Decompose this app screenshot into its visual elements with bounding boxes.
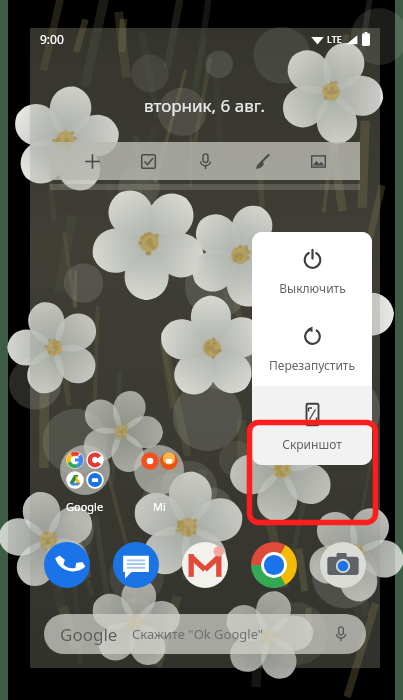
button[interactable]: Скриншот xyxy=(252,386,372,465)
button[interactable]: Camera xyxy=(320,542,366,588)
button[interactable]: Image note xyxy=(303,146,333,176)
staticText: Скажите "Ok Google" xyxy=(132,625,264,643)
other: Google folder xyxy=(60,445,110,495)
staticText: 9:00 xyxy=(40,31,64,47)
staticText: Google xyxy=(60,623,118,646)
button[interactable]: Перезапустить xyxy=(252,309,372,386)
button[interactable]: Chrome xyxy=(251,542,297,588)
button[interactable]: Gmail xyxy=(182,542,228,588)
other: Phone xyxy=(44,542,90,588)
button[interactable]: вторник, 6 авг. xyxy=(144,94,266,117)
button[interactable]: Google xyxy=(44,614,366,654)
button[interactable]: New note xyxy=(77,146,107,176)
staticText: Скриншот xyxy=(282,436,342,452)
staticText: Google xyxy=(66,499,104,514)
button[interactable]: New list xyxy=(133,146,163,176)
button[interactable]: Drawing note xyxy=(247,146,277,176)
other: Messages xyxy=(113,542,159,588)
button[interactable]: Google folder xyxy=(48,445,122,514)
staticText: LTE xyxy=(327,33,342,45)
staticText: Выключить xyxy=(279,280,346,296)
button[interactable]: Phone xyxy=(44,542,90,588)
other: Chrome xyxy=(251,542,297,588)
button[interactable]: Mi folder xyxy=(122,445,196,514)
other: Mi folder xyxy=(134,445,184,495)
button[interactable]: Voice note xyxy=(190,146,220,176)
staticText: Перезапустить xyxy=(269,357,355,373)
button[interactable]: Messages xyxy=(113,542,159,588)
button[interactable]: Выключить xyxy=(252,232,372,309)
other: Gmail xyxy=(182,542,228,588)
other: Camera xyxy=(320,542,366,588)
other: Voice search xyxy=(332,625,350,643)
staticText: Mi xyxy=(153,499,166,514)
